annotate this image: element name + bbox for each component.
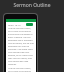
button[interactable] xyxy=(26,23,33,26)
staticText: Sermon Outline xyxy=(0,2,64,9)
staticText: And he said unto them, Go ye into all th… xyxy=(8,67,34,72)
staticText: And he said unto them, Go ye into all th… xyxy=(8,27,34,66)
staticText: Mark 16:15 xyxy=(8,23,21,26)
